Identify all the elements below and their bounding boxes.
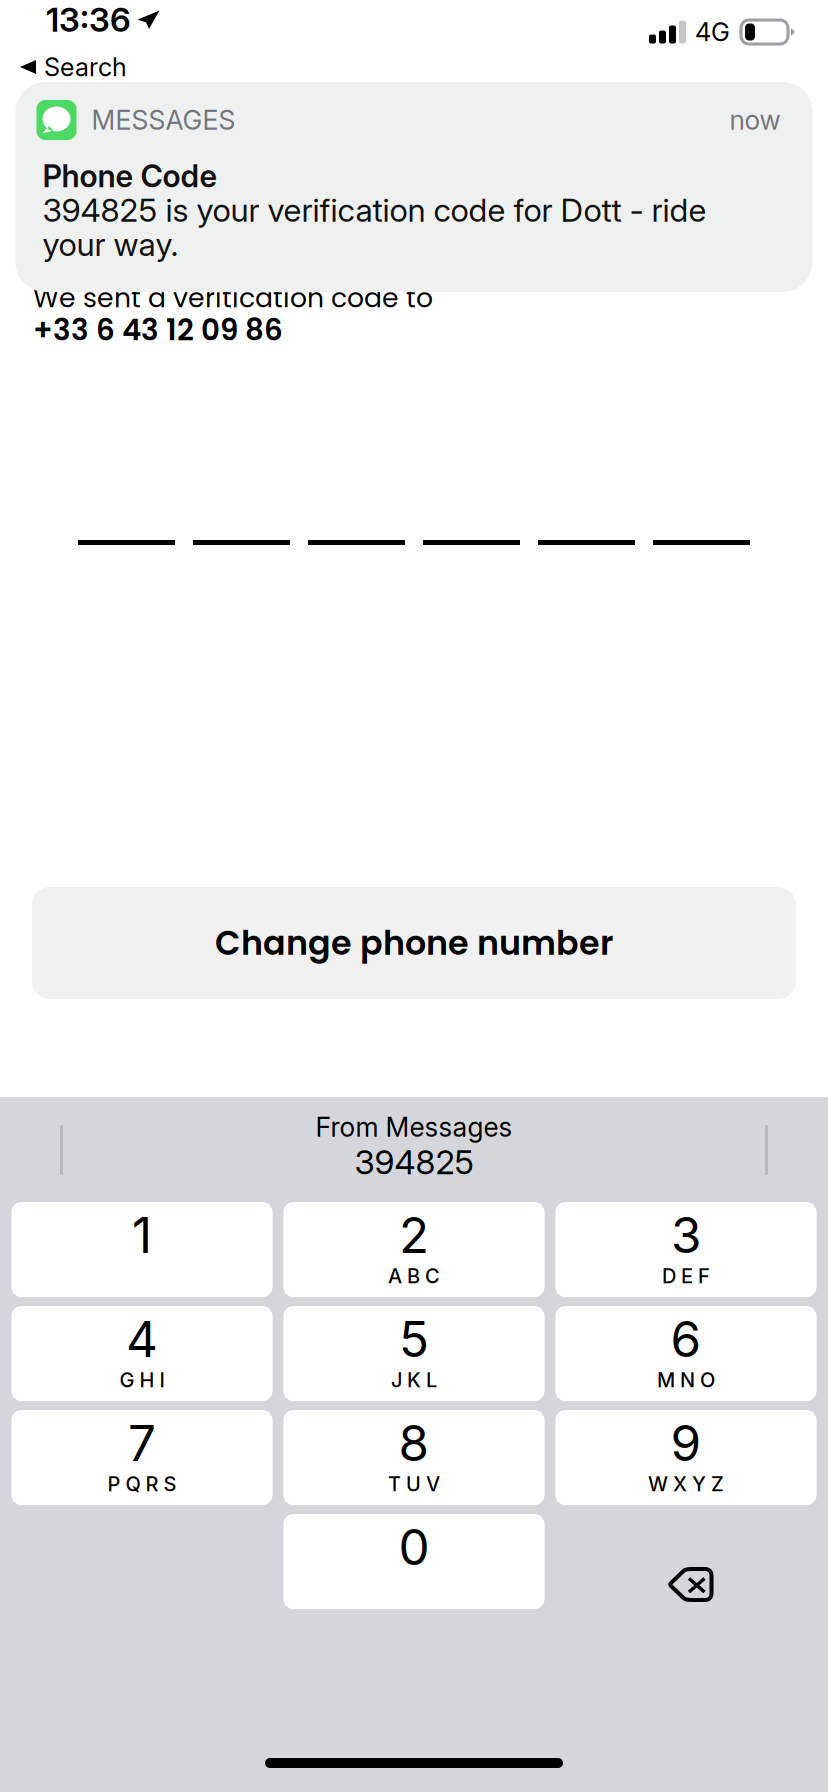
staticText: 2: [399, 1205, 429, 1265]
button[interactable]: 9: [555, 1410, 816, 1505]
button[interactable]: 7: [11, 1410, 272, 1505]
staticText: 4: [126, 1309, 158, 1369]
staticText: W X Y Z: [648, 1472, 724, 1496]
staticText: 394825 is your verification code for Dot…: [42, 191, 706, 229]
button[interactable]: 4: [11, 1306, 272, 1401]
staticText: 4G: [695, 17, 730, 47]
staticText: D E F: [662, 1264, 710, 1288]
button[interactable]: Back to Search: [0, 51, 127, 83]
staticText: 7: [128, 1413, 156, 1473]
button[interactable]: 3: [555, 1202, 816, 1297]
staticText: T U V: [388, 1472, 440, 1496]
staticText: 9: [670, 1413, 701, 1473]
staticText: J K L: [391, 1368, 437, 1392]
button[interactable]: MESSAGES: [15, 82, 812, 292]
button[interactable]: 1: [11, 1202, 272, 1297]
staticText: your way.: [42, 225, 178, 264]
staticText: We sent a veritication code to: [33, 279, 433, 317]
button[interactable]: Change phone number: [32, 887, 796, 999]
staticText: M N O: [657, 1368, 715, 1392]
staticText: P Q R S: [107, 1472, 176, 1496]
staticText: From Messages: [315, 1111, 512, 1143]
staticText: 6: [670, 1309, 701, 1369]
staticText: Change phone number: [215, 920, 613, 966]
button[interactable]: 5: [283, 1306, 544, 1401]
staticText: 0: [398, 1517, 429, 1577]
staticText: A B C: [388, 1264, 440, 1288]
button[interactable]: Delete: [555, 1514, 816, 1609]
button[interactable]: 8: [283, 1410, 544, 1505]
staticText: 13:36: [46, 0, 131, 40]
button[interactable]: 2: [283, 1202, 544, 1297]
staticText: Search: [44, 52, 127, 82]
button[interactable]: 0: [283, 1514, 544, 1609]
staticText: Phone Code: [42, 157, 217, 194]
staticText: MESSAGES: [91, 104, 235, 136]
staticText: 8: [398, 1413, 429, 1473]
staticText: 5: [399, 1309, 429, 1369]
staticText: G H I: [119, 1368, 164, 1392]
staticText: +33 6 43 12 09 86: [33, 309, 283, 351]
button[interactable]: From Messages: [214, 1097, 614, 1194]
button[interactable]: 6: [555, 1306, 816, 1401]
staticText: now: [729, 104, 780, 136]
staticText: 1: [132, 1205, 152, 1265]
staticText: 394825: [354, 1142, 473, 1182]
staticText: 3: [671, 1205, 701, 1265]
